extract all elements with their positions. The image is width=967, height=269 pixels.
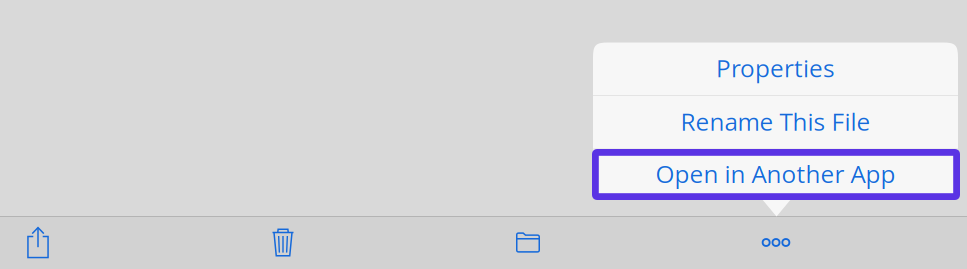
- button[interactable]: Properties: [593, 42, 958, 95]
- button[interactable]: Share: [6, 216, 70, 268]
- staticText: Rename This File: [680, 105, 870, 138]
- staticText: Properties: [716, 51, 835, 84]
- button[interactable]: More: [744, 216, 808, 268]
- button[interactable]: Delete: [251, 216, 315, 268]
- button[interactable]: Move to Folder: [496, 216, 560, 268]
- staticText: Open in Another App: [655, 157, 895, 190]
- button[interactable]: Open in Another App: [593, 149, 958, 199]
- button[interactable]: Rename This File: [593, 96, 958, 148]
